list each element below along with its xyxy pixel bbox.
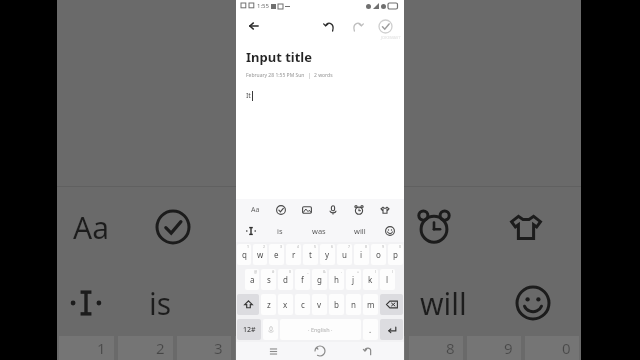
staticText: 2 bbox=[156, 338, 165, 358]
button[interactable]: _ bbox=[295, 269, 310, 290]
button[interactable]: c bbox=[295, 294, 310, 315]
staticText: o bbox=[376, 249, 381, 260]
staticText: ) bbox=[392, 269, 394, 274]
button[interactable]: Aa bbox=[246, 201, 264, 219]
button[interactable]: b bbox=[329, 294, 344, 315]
button[interactable]: 4 bbox=[286, 244, 301, 265]
staticText: @ bbox=[254, 269, 258, 274]
button[interactable]: Insert image bbox=[298, 201, 316, 219]
button[interactable]: 9 bbox=[371, 244, 386, 265]
button[interactable]: Voice input bbox=[263, 319, 278, 340]
button[interactable]: is bbox=[273, 224, 287, 238]
button[interactable]: Voice input bbox=[324, 201, 342, 219]
staticText: # bbox=[272, 269, 275, 274]
staticText: 1 bbox=[97, 338, 106, 358]
button[interactable]: 6 bbox=[320, 244, 335, 265]
staticText: w bbox=[257, 249, 264, 260]
staticText: u bbox=[342, 249, 347, 260]
button[interactable]: 3 bbox=[269, 244, 284, 265]
button[interactable]: $ bbox=[278, 269, 293, 290]
button[interactable]: Back bbox=[244, 16, 264, 36]
button[interactable]: Save bbox=[374, 15, 396, 37]
button[interactable]: Enter bbox=[380, 319, 403, 340]
button[interactable]: will bbox=[350, 224, 370, 238]
staticText: 5 bbox=[314, 244, 317, 249]
staticText: z bbox=[267, 299, 271, 310]
staticText: is bbox=[149, 283, 172, 324]
staticText: b bbox=[334, 299, 339, 310]
staticText: i bbox=[360, 249, 363, 260]
button[interactable]: 1 bbox=[237, 244, 251, 265]
staticText: · English · bbox=[308, 326, 333, 333]
staticText: will bbox=[420, 283, 467, 324]
button[interactable]: . bbox=[363, 319, 378, 340]
button[interactable]: Back bbox=[357, 342, 377, 360]
staticText: q bbox=[242, 249, 247, 260]
staticText: February 28 1:55 PM Sun bbox=[246, 72, 305, 79]
staticText: j bbox=[352, 274, 355, 285]
button[interactable]: Checklist bbox=[272, 201, 290, 219]
staticText: 2 words bbox=[314, 72, 333, 79]
button[interactable]: # bbox=[261, 269, 276, 290]
staticText: 9 bbox=[504, 338, 513, 358]
staticText: h bbox=[334, 274, 339, 285]
staticText: v bbox=[317, 299, 322, 310]
button[interactable]: ( bbox=[363, 269, 378, 290]
staticText: Aa bbox=[73, 207, 109, 248]
button[interactable]: Recents bbox=[263, 342, 283, 360]
button[interactable]: x bbox=[278, 294, 293, 315]
staticText: 0 bbox=[399, 244, 402, 249]
staticText: is bbox=[277, 226, 283, 236]
button[interactable]: 0 bbox=[388, 244, 403, 265]
staticText: 1:55 bbox=[257, 2, 269, 10]
button[interactable]: n bbox=[346, 294, 361, 315]
button[interactable]: Undo bbox=[318, 15, 340, 37]
staticText: 12# bbox=[243, 325, 256, 335]
staticText: d bbox=[283, 274, 288, 285]
button[interactable]: v bbox=[312, 294, 327, 315]
button[interactable]: & bbox=[312, 269, 327, 290]
button[interactable]: + bbox=[346, 269, 361, 290]
staticText: - bbox=[341, 269, 343, 274]
staticText: ( bbox=[375, 269, 377, 274]
button[interactable]: was bbox=[308, 224, 330, 238]
staticText: Input title bbox=[246, 48, 313, 66]
button[interactable]: Reminder bbox=[350, 201, 368, 219]
staticText: g bbox=[317, 274, 322, 285]
staticText: was bbox=[312, 226, 326, 236]
button[interactable]: - bbox=[329, 269, 344, 290]
staticText: f bbox=[301, 274, 304, 285]
staticText: 1 bbox=[247, 244, 250, 249]
staticText: 7 bbox=[348, 244, 351, 249]
staticText: c bbox=[301, 299, 305, 310]
staticText: _ bbox=[307, 269, 309, 274]
staticText: 2 bbox=[263, 244, 266, 249]
staticText: 4 bbox=[297, 244, 300, 249]
staticText: It bbox=[246, 91, 251, 101]
staticText: m bbox=[367, 299, 375, 310]
button[interactable]: Redo bbox=[346, 15, 368, 37]
button[interactable]: 8 bbox=[354, 244, 369, 265]
button[interactable]: 5 bbox=[303, 244, 318, 265]
staticText: 0 bbox=[562, 338, 571, 358]
staticText: n bbox=[351, 299, 356, 310]
staticText: e bbox=[274, 249, 279, 260]
staticText: 3 bbox=[280, 244, 283, 249]
button[interactable]: Emoji bbox=[382, 223, 398, 239]
button[interactable]: ) bbox=[380, 269, 395, 290]
button[interactable]: 12# bbox=[237, 319, 261, 340]
button[interactable]: 7 bbox=[337, 244, 352, 265]
button[interactable]: z bbox=[261, 294, 276, 315]
button[interactable]: · English · bbox=[280, 319, 361, 340]
button[interactable]: 2 bbox=[253, 244, 267, 265]
button[interactable]: Sticker bbox=[376, 201, 394, 219]
button[interactable]: Backspace bbox=[380, 294, 403, 315]
button[interactable]: Move cursor bbox=[243, 223, 259, 239]
staticText: $ bbox=[289, 269, 292, 274]
button[interactable]: m bbox=[363, 294, 378, 315]
button[interactable]: Shift bbox=[237, 294, 259, 315]
button[interactable]: Home bbox=[310, 342, 330, 360]
button[interactable]: @ bbox=[245, 269, 259, 290]
staticText: r bbox=[292, 249, 296, 260]
staticText: a bbox=[250, 274, 255, 285]
